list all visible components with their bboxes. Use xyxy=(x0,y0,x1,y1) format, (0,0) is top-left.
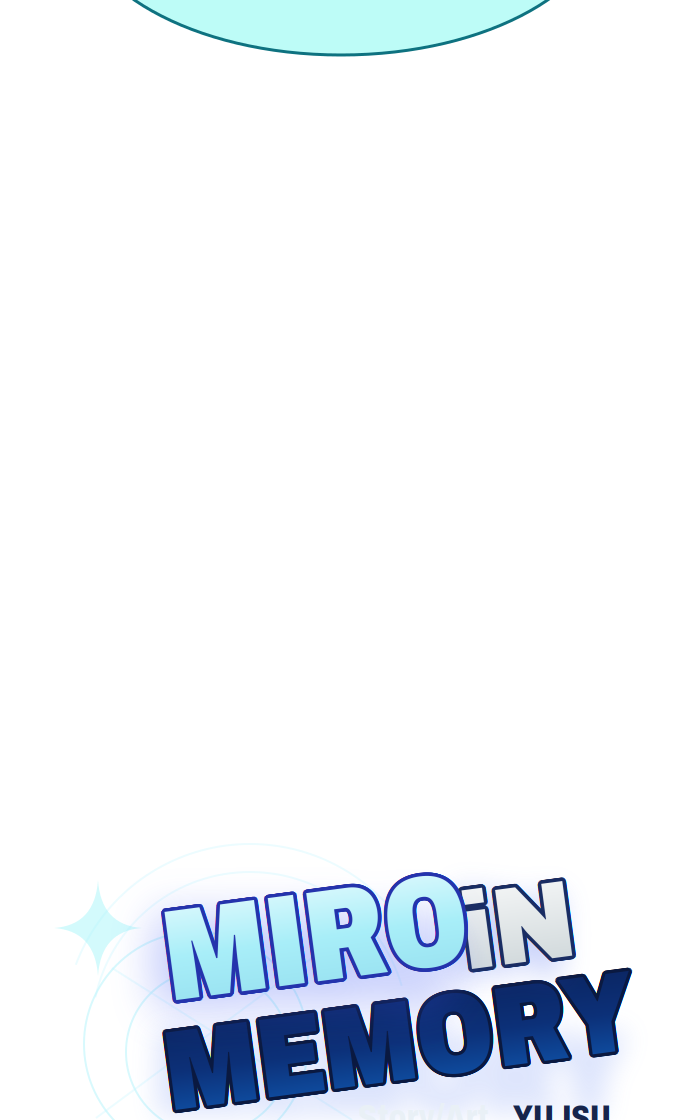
staticText: MIRO xyxy=(162,871,469,1012)
staticText: iN xyxy=(458,864,572,983)
staticText: MEMORY xyxy=(165,982,638,1105)
staticText: MIRO xyxy=(165,870,472,1011)
staticText: MEMORY xyxy=(164,983,637,1107)
staticText: MIRO xyxy=(162,864,469,1005)
staticText: MIRO xyxy=(166,866,473,1007)
staticText: MEMORY xyxy=(161,983,634,1107)
staticText: MIRO xyxy=(160,865,467,1006)
staticText: iN xyxy=(460,870,574,989)
staticText: iN xyxy=(464,866,578,985)
staticText: iN xyxy=(462,863,576,982)
staticText: MEMORY xyxy=(165,978,638,1101)
staticText: MIRO xyxy=(161,864,468,1005)
staticText: iN xyxy=(464,868,578,987)
staticText: iN xyxy=(462,870,576,989)
staticText: iN xyxy=(463,869,577,988)
staticText: MIRO xyxy=(164,871,471,1012)
staticText: MEMORY xyxy=(165,983,638,1106)
staticText: MIRO xyxy=(164,864,471,1005)
staticText: iN xyxy=(464,865,578,984)
staticText: iN xyxy=(458,869,572,988)
staticText: MIRO xyxy=(162,871,469,1012)
staticText: iN xyxy=(464,868,578,987)
staticText: MIRO xyxy=(165,865,472,1006)
staticText: MEMORY xyxy=(161,977,634,1101)
staticText: iN xyxy=(458,869,572,988)
staticText: MEMORY xyxy=(159,982,632,1105)
staticText: MIRO xyxy=(161,864,468,1005)
staticText: MIRO xyxy=(159,869,466,1010)
staticText: iN xyxy=(462,863,576,982)
staticText: MEMORY xyxy=(159,979,632,1102)
staticText: MEMORY xyxy=(159,979,632,1102)
staticText: iN xyxy=(458,865,572,984)
staticText: iN xyxy=(460,863,574,982)
staticText: iN xyxy=(461,863,575,982)
staticText: iN xyxy=(458,868,572,987)
staticText: MIRO xyxy=(166,869,473,1010)
staticText: iN xyxy=(458,865,572,984)
staticText: iN xyxy=(461,863,575,982)
staticText: MEMORY xyxy=(165,979,638,1102)
staticText: MEMORY xyxy=(165,983,638,1106)
staticText: iN xyxy=(463,869,577,988)
staticText: MEMORY xyxy=(165,982,638,1105)
staticText: MIRO xyxy=(161,871,468,1012)
staticText: MEMORY xyxy=(164,983,637,1107)
staticText: MIRO xyxy=(159,868,466,1008)
staticText: iN xyxy=(457,866,571,985)
staticText: MIRO xyxy=(164,864,471,1005)
staticText: MIRO xyxy=(160,865,467,1006)
staticText: MEMORY xyxy=(161,983,634,1107)
staticText: iN xyxy=(457,866,571,985)
staticText: MIRO xyxy=(165,865,472,1006)
staticText: MIRO xyxy=(160,870,467,1011)
staticText: MEMORY xyxy=(160,978,633,1101)
staticText: MEMORY xyxy=(164,977,637,1101)
staticText: MIRO xyxy=(166,866,473,1007)
staticText: MIRO xyxy=(159,866,466,1007)
staticText: MEMORY xyxy=(162,983,635,1107)
staticText: iN xyxy=(463,864,577,983)
staticText: MEMORY xyxy=(166,980,639,1104)
staticText: MIRO xyxy=(164,871,471,1012)
staticText: MIRO xyxy=(166,868,473,1008)
staticText: MEMORY xyxy=(160,983,633,1106)
staticText: MEMORY xyxy=(166,980,639,1104)
staticText: MEMORY xyxy=(164,977,637,1101)
staticText: MEMORY xyxy=(160,983,633,1106)
staticText: MIRO xyxy=(166,868,473,1008)
staticText: MIRO xyxy=(159,868,466,1008)
staticText: iN xyxy=(461,870,575,989)
staticText: iN xyxy=(458,864,572,983)
staticText: MEMORY xyxy=(159,982,632,1105)
staticText: iN xyxy=(460,870,574,989)
staticText: MIRO xyxy=(159,866,466,1007)
staticText: iN xyxy=(464,865,578,984)
staticText: MEMORY xyxy=(160,978,633,1101)
staticText: MEMORY xyxy=(162,977,635,1100)
staticText: MIRO xyxy=(165,870,472,1011)
staticText: MEMORY xyxy=(161,977,634,1101)
staticText: MEMORY xyxy=(159,980,632,1104)
staticText: MEMORY xyxy=(165,978,638,1101)
staticText: MEMORY xyxy=(162,983,635,1107)
staticText: MEMORY xyxy=(162,977,635,1100)
staticText: Story/Art xyxy=(357,1098,488,1120)
staticText: YUJSU xyxy=(513,1099,611,1120)
staticText: MIRO xyxy=(159,869,466,1010)
staticText: MIRO xyxy=(160,870,467,1011)
staticText: iN xyxy=(462,870,576,989)
staticText: iN xyxy=(460,863,574,982)
staticText: MEMORY xyxy=(159,980,632,1104)
staticText: iN xyxy=(458,868,572,987)
staticText: iN xyxy=(463,864,577,983)
staticText: MEMORY xyxy=(165,979,638,1102)
staticText: iN xyxy=(464,866,578,985)
staticText: MIRO xyxy=(162,864,469,1005)
staticText: MIRO xyxy=(161,871,468,1012)
staticText: MIRO xyxy=(166,869,473,1010)
staticText: iN xyxy=(461,870,575,989)
